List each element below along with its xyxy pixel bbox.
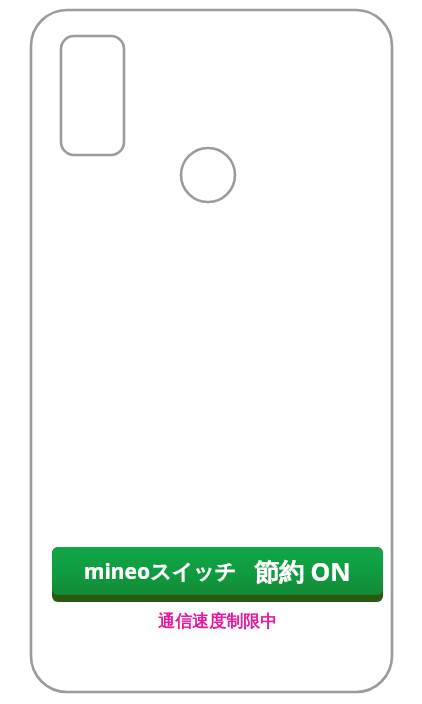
staticText: 通信速度制限中: [158, 611, 277, 632]
staticText: 節約 ON: [254, 554, 351, 588]
button[interactable]: mineoスイッチ: [52, 547, 383, 602]
staticText: mineoスイッチ: [84, 557, 237, 586]
